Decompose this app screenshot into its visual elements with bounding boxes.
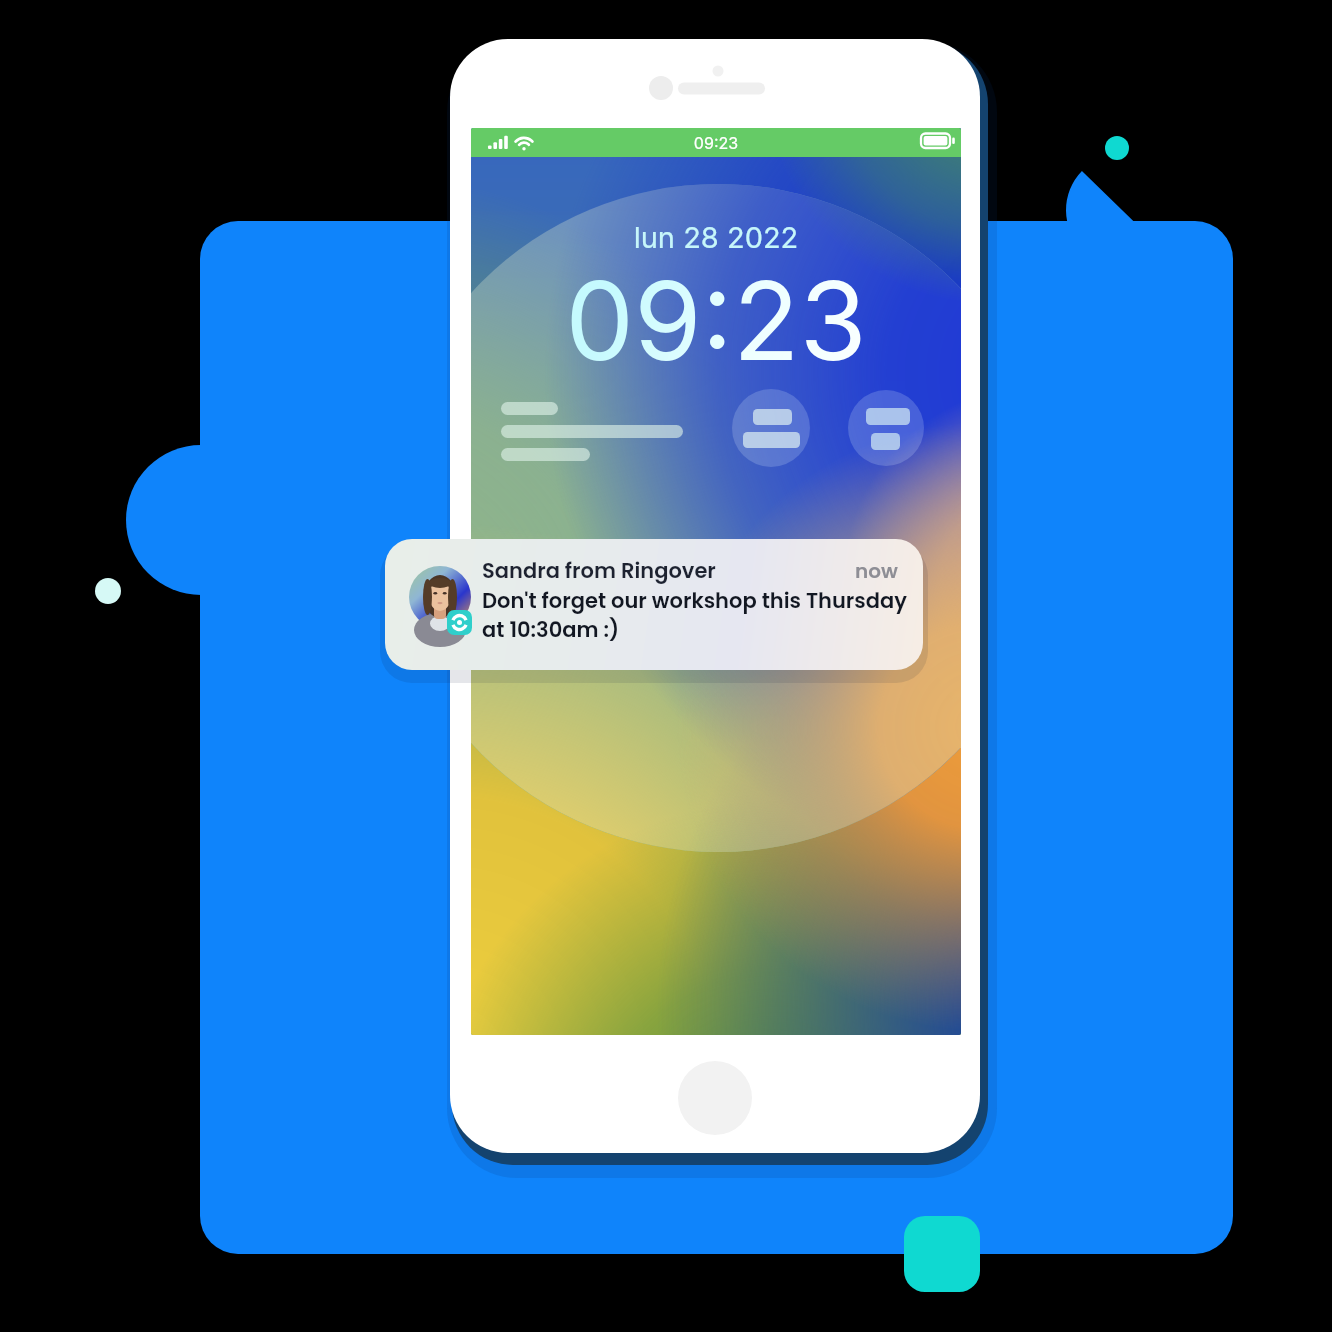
button[interactable]: Home [678,1061,752,1135]
staticText: 09:23 [471,254,961,1035]
staticText: at 10:30am :) [482,615,682,644]
staticText: 09:23 [471,133,961,1035]
staticText: Sandra from Ringover [482,556,732,585]
button[interactable]: Camera [848,390,924,466]
staticText: Don't forget our workshop this Thursday [482,586,912,615]
button[interactable]: Sandra avatar [385,539,923,670]
staticText: now [855,557,915,585]
button[interactable]: Flashlight [732,389,810,467]
other: Ringover [447,610,472,635]
staticText: lun 28 2022 [471,220,961,1035]
other: Sandra avatar [409,566,471,628]
